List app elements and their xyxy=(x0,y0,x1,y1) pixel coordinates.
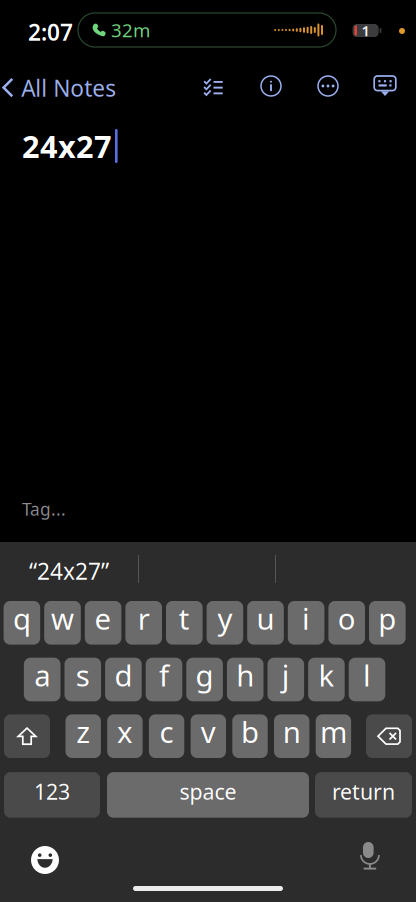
staticText: e xyxy=(95,599,112,638)
button[interactable]: Shift xyxy=(4,714,50,758)
button[interactable]: s xyxy=(64,658,101,701)
staticText: All Notes xyxy=(21,73,116,103)
staticText: 32m xyxy=(111,18,150,42)
button[interactable]: l xyxy=(349,658,385,701)
button[interactable]: Info xyxy=(253,72,289,100)
button[interactable]: Dictate xyxy=(360,842,380,872)
button[interactable]: d xyxy=(105,658,142,701)
button[interactable]: y xyxy=(207,601,243,645)
button[interactable]: f xyxy=(146,658,182,701)
button[interactable]: k xyxy=(308,658,345,701)
button[interactable]: return xyxy=(315,772,412,818)
staticText: x xyxy=(117,712,133,751)
staticText: t xyxy=(179,599,190,638)
button[interactable]: b xyxy=(232,714,268,758)
button[interactable]: o xyxy=(328,601,365,645)
staticText: c xyxy=(160,712,174,751)
button[interactable]: p xyxy=(369,601,406,645)
button[interactable]: i xyxy=(288,601,324,645)
button[interactable]: “24x27” xyxy=(0,543,138,599)
staticText: k xyxy=(318,655,334,694)
button[interactable]: More xyxy=(310,72,346,100)
staticText: Tag... xyxy=(22,497,66,520)
button[interactable]: Delete xyxy=(366,714,412,758)
button[interactable]: a xyxy=(24,658,60,701)
staticText: 1 xyxy=(362,21,370,40)
staticText: d xyxy=(114,655,132,694)
staticText: l xyxy=(363,655,371,694)
button[interactable]: u xyxy=(247,601,284,645)
staticText: 24x27 xyxy=(22,126,112,166)
button[interactable]: v xyxy=(191,714,226,758)
staticText: a xyxy=(34,655,50,694)
staticText: return xyxy=(332,777,395,805)
staticText: r xyxy=(138,599,150,638)
staticText: m xyxy=(320,712,347,751)
staticText: w xyxy=(51,599,74,638)
staticText: u xyxy=(256,599,274,638)
staticText: q xyxy=(13,599,31,638)
staticText: 2:07 xyxy=(28,17,73,47)
button[interactable]: w xyxy=(44,601,81,645)
button[interactable]: j xyxy=(267,658,304,701)
staticText: n xyxy=(283,712,301,751)
staticText: g xyxy=(196,655,214,694)
staticText: b xyxy=(241,712,259,751)
staticText: j xyxy=(282,655,290,694)
staticText: v xyxy=(201,712,216,751)
button[interactable]: g xyxy=(186,658,223,701)
button[interactable]: h xyxy=(227,658,263,701)
button[interactable]: m xyxy=(316,714,351,758)
staticText: z xyxy=(76,712,90,751)
button[interactable]: c xyxy=(149,714,184,758)
staticText: s xyxy=(76,655,90,694)
button[interactable]: Active call, 32 minutes xyxy=(78,13,336,47)
button[interactable]: r xyxy=(125,601,162,645)
button[interactable]: Emoji xyxy=(31,846,59,874)
staticText: o xyxy=(338,599,356,638)
button[interactable]: space xyxy=(107,772,309,818)
staticText: “24x27” xyxy=(29,556,109,586)
button[interactable]: x xyxy=(107,714,143,758)
staticText: y xyxy=(217,599,232,638)
staticText: i xyxy=(302,599,310,638)
button[interactable]: t xyxy=(166,601,203,645)
button[interactable]: 123 xyxy=(4,772,100,818)
staticText: h xyxy=(236,655,254,694)
staticText: 123 xyxy=(34,777,70,805)
button[interactable]: e xyxy=(85,601,121,645)
staticText: space xyxy=(179,777,236,805)
button[interactable]: Hide Keyboard xyxy=(367,73,403,99)
button[interactable]: n xyxy=(274,714,309,758)
button[interactable]: q xyxy=(4,601,40,645)
staticText: p xyxy=(378,599,396,638)
staticText: f xyxy=(159,655,169,694)
button[interactable]: z xyxy=(65,714,101,758)
button[interactable]: All Notes xyxy=(10,77,116,99)
button[interactable]: Checklist xyxy=(195,72,231,100)
